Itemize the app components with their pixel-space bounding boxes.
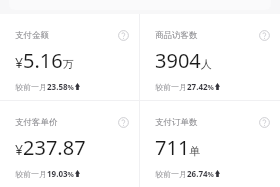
staticText: 较前一月23.58%	[15, 81, 74, 92]
staticText: 支付客单价	[15, 117, 58, 128]
staticText: 较前一月27.42%	[155, 81, 214, 92]
staticText: 支付金额	[15, 30, 49, 41]
staticText: 较前一月19.03%	[15, 168, 74, 179]
staticText: 商品访客数	[155, 30, 198, 41]
staticText: ¥237.87	[15, 134, 86, 161]
button[interactable]: 帮助说明	[259, 117, 270, 128]
button[interactable]: 支付订单数	[140, 101, 280, 187]
staticText: ¥5.16万	[15, 47, 74, 74]
button[interactable]: 商品访客数	[140, 14, 280, 100]
button[interactable]: 支付金额	[0, 14, 139, 100]
staticText: 较前一月26.74%	[155, 168, 214, 179]
button[interactable]: 帮助说明	[118, 30, 129, 41]
button[interactable]: 帮助说明	[259, 30, 270, 41]
staticText: 支付订单数	[155, 117, 198, 128]
button[interactable]: 支付客单价	[0, 101, 139, 187]
staticText: 3904人	[155, 47, 212, 74]
button[interactable]: 帮助说明	[118, 117, 129, 128]
staticText: 711单	[155, 134, 201, 161]
